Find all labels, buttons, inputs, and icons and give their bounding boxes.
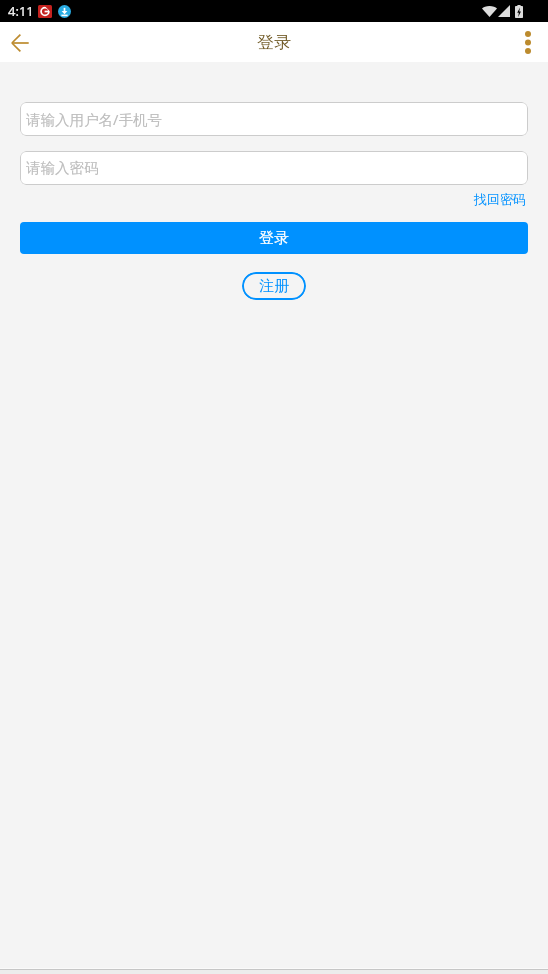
- other: Mobile signal: [498, 5, 510, 17]
- staticText: 找回密码: [474, 191, 526, 207]
- button[interactable]: Back: [0, 22, 40, 62]
- staticText: 注册: [259, 277, 289, 296]
- staticText: 4:11: [8, 2, 34, 20]
- other: Wi-Fi: [482, 5, 497, 17]
- button[interactable]: More options: [508, 22, 548, 62]
- staticText: 请输入密码: [26, 159, 99, 177]
- staticText: 登录: [257, 32, 291, 53]
- other: Download: [58, 5, 71, 18]
- other: Battery charging: [515, 5, 523, 18]
- other: Notification: [38, 5, 52, 18]
- button[interactable]: 请输入密码: [20, 151, 528, 185]
- button[interactable]: 注册: [242, 272, 306, 300]
- button[interactable]: 请输入用户名/手机号: [20, 102, 528, 136]
- staticText: 登录: [259, 229, 289, 248]
- button[interactable]: 登录: [20, 222, 528, 254]
- staticText: 请输入用户名/手机号: [26, 109, 162, 129]
- button[interactable]: 找回密码: [466, 187, 534, 211]
